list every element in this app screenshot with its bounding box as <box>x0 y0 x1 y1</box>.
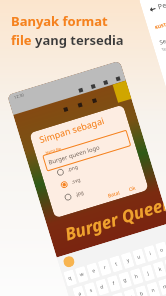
staticText: t <box>114 260 118 268</box>
staticText: 12:30 <box>13 92 25 100</box>
staticText: v <box>128 293 133 296</box>
staticText: s <box>89 287 94 294</box>
staticText: Batal <box>107 189 120 200</box>
staticText: e <box>91 267 96 275</box>
staticText: h <box>134 273 140 280</box>
staticText: Pengaturan <box>157 0 166 12</box>
staticText: a <box>77 290 82 296</box>
staticText: r <box>103 263 108 271</box>
staticText: KUSTOMISASI <box>154 15 166 30</box>
staticText: Simpan sebagai <box>38 114 106 145</box>
staticText: .png <box>67 163 79 173</box>
staticText: file <box>11 31 35 49</box>
staticText: g <box>122 276 128 284</box>
staticText: yang tersedia <box>35 31 124 49</box>
staticText: o <box>159 246 165 254</box>
staticText: Burger Queen <box>62 193 166 245</box>
staticText: b <box>139 290 145 296</box>
staticText: j <box>146 269 150 277</box>
staticText: Nama file <box>45 146 62 155</box>
staticText: Banyak format <box>11 12 108 30</box>
staticText: Sesuaikan <box>158 30 166 46</box>
staticText: m <box>162 282 166 291</box>
staticText: d <box>99 283 105 291</box>
staticText: f <box>112 280 116 287</box>
staticText: Ok <box>128 185 137 193</box>
staticText: y <box>126 256 131 264</box>
staticText: .jpg <box>74 189 85 198</box>
staticText: w <box>79 271 85 278</box>
staticText: Tema aplikasi <box>161 40 166 52</box>
staticText: .svg <box>70 176 82 186</box>
staticText: k <box>158 266 163 273</box>
staticText: Burger queen logo <box>47 143 101 167</box>
staticText: n <box>150 286 156 294</box>
staticText: i <box>149 250 153 257</box>
staticText: u <box>136 253 142 261</box>
staticText: q <box>67 274 73 282</box>
